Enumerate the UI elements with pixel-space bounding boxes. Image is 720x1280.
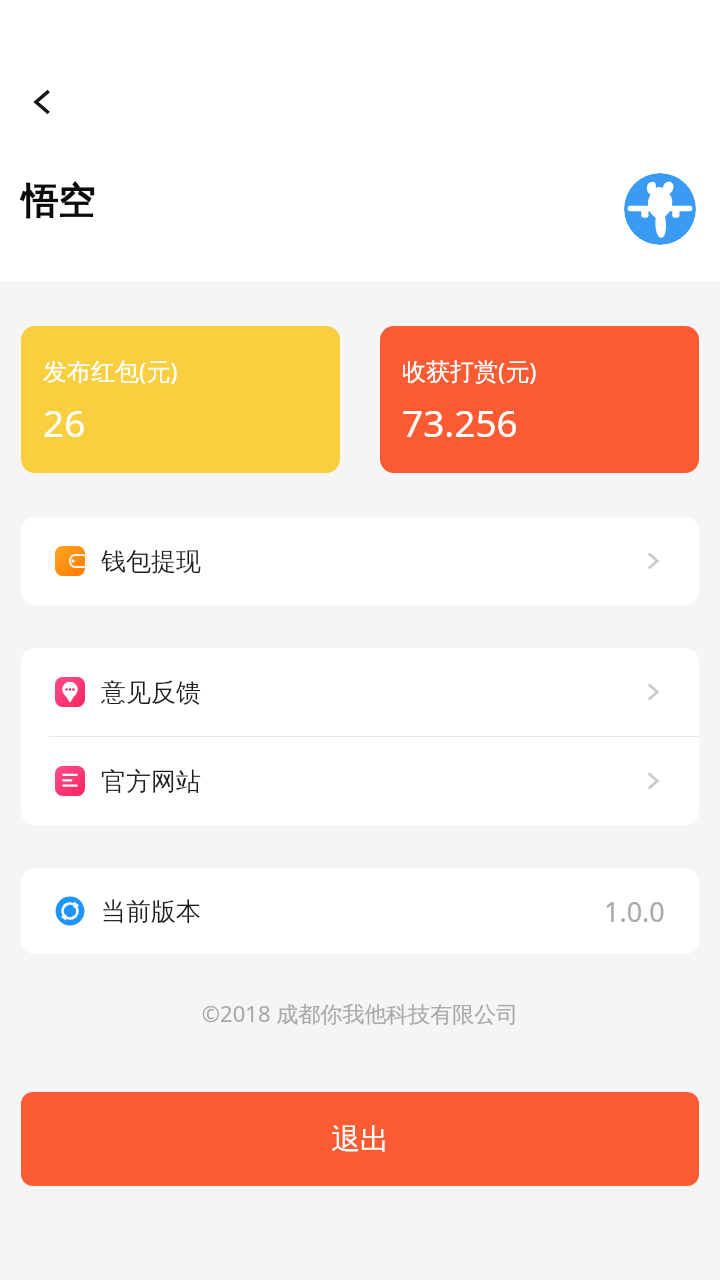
staticText: 意见反馈 bbox=[101, 677, 201, 708]
button[interactable]: 钱包提现 bbox=[21, 517, 699, 605]
staticText: 悟空 bbox=[21, 178, 95, 225]
button[interactable]: Back bbox=[14, 74, 70, 130]
button[interactable]: 意见反馈 bbox=[21, 648, 699, 736]
staticText: 钱包提现 bbox=[101, 546, 201, 577]
button[interactable]: 收获打赏(元) bbox=[380, 326, 699, 473]
staticText: 73.256 bbox=[402, 397, 518, 447]
button[interactable]: 退出 bbox=[21, 1092, 699, 1186]
staticText: 官方网站 bbox=[101, 766, 201, 797]
staticText: 退出 bbox=[331, 1121, 389, 1158]
button[interactable]: Language bbox=[624, 173, 696, 245]
staticText: 收获打赏(元) bbox=[402, 354, 537, 387]
button[interactable]: 发布红包(元) bbox=[21, 326, 340, 473]
staticText: ©2018 成都你我他科技有限公司 bbox=[0, 998, 720, 1028]
staticText: 当前版本 bbox=[101, 896, 201, 927]
button[interactable]: 官方网站 bbox=[21, 737, 699, 825]
button[interactable]: 当前版本 bbox=[21, 868, 699, 954]
staticText: 发布红包(元) bbox=[43, 354, 178, 387]
staticText: 1.0.0 bbox=[604, 893, 665, 930]
staticText: 26 bbox=[43, 397, 86, 447]
